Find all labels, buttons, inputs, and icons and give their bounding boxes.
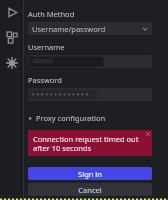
staticText: Connection request timed out after 10 se… <box>33 134 140 154</box>
button[interactable]: Close <box>144 130 152 138</box>
button[interactable]: Proxy configuration <box>28 112 106 124</box>
staticText: Proxy configuration <box>36 113 106 123</box>
staticText: Username <box>28 42 65 52</box>
button[interactable]: Debug <box>2 53 22 73</box>
staticText: Cancel <box>78 185 102 195</box>
staticText: Username/password <box>32 24 142 34</box>
button[interactable]: Username/password <box>28 22 152 35</box>
button[interactable] <box>28 55 152 68</box>
staticText: Password <box>28 75 62 85</box>
button[interactable]: Structure <box>2 27 22 47</box>
button[interactable]: Cancel <box>28 183 152 196</box>
button[interactable] <box>28 88 152 101</box>
staticText: Sign in <box>78 169 102 179</box>
button[interactable]: Sign in <box>28 167 152 180</box>
staticText: Auth Method <box>28 9 75 19</box>
button[interactable]: Run <box>2 2 22 22</box>
